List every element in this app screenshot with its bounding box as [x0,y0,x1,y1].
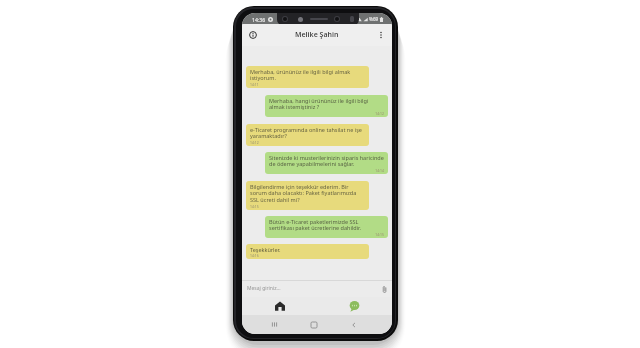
button[interactable]: e-Ticaret programında online tahsilat ne… [246,124,369,146]
staticText: Mesaj giriniz... [247,285,281,292]
button[interactable]: Merhaba, ürününüz ile ilgili bilgi almak… [246,66,369,88]
button[interactable]: Back [334,315,374,334]
staticText: Sitenizde ki musterilerinizin siparis ha… [269,154,384,168]
staticText: Bütün e-Ticaret paketlerimizde SSL serti… [269,218,384,232]
button[interactable]: Recent apps [254,315,294,334]
staticText: 14:16 [250,253,365,258]
button[interactable]: More options [373,27,389,43]
staticText: 14:15 [269,232,384,237]
button[interactable]: Teşekkürler. [246,244,369,259]
button[interactable]: Messages [317,297,392,315]
staticText: Melike Şahin [295,30,339,40]
button[interactable]: Sitenizde ki musterilerinizin siparis ha… [265,152,388,174]
staticText: Merhaba, hangi ürününüz ile ilgili bilgi… [269,97,384,111]
button[interactable]: Home [242,297,317,315]
staticText: 14:36 [252,16,266,23]
button[interactable]: Home [294,315,334,334]
button[interactable]: Attach file [378,283,390,295]
staticText: Teşekkürler. [250,246,281,253]
staticText: Bilgilendirme için teşekkür ederim. Bir … [250,183,365,204]
button[interactable]: Merhaba, hangi ürününüz ile ilgili bilgi… [265,95,388,117]
staticText: 14:12 [250,140,365,145]
button[interactable]: Bilgilendirme için teşekkür ederim. Bir … [246,181,369,210]
staticText: 14:15 [250,204,365,209]
staticText: 14:14 [269,168,384,173]
staticText: 14:11 [250,82,365,87]
staticText: 14:12 [269,111,384,116]
button[interactable]: Bütün e-Ticaret paketlerimizde SSL serti… [265,216,388,238]
staticText: Merhaba, ürününüz ile ilgili bilgi almak… [250,68,365,82]
button[interactable]: Conversation info [245,27,261,43]
staticText: %69 [369,16,379,22]
staticText: e-Ticaret programında online tahsilat ne… [250,126,365,140]
